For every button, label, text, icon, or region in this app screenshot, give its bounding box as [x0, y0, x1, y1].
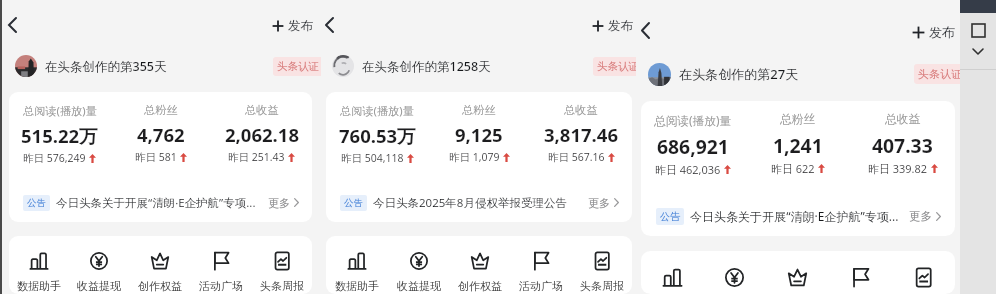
staticText: 总收益 — [885, 112, 921, 127]
staticText: 活动广场 — [199, 279, 243, 293]
button[interactable]: 总阅读(播放)量 — [9, 92, 312, 222]
staticText: 在头条创作的第355天 — [45, 58, 167, 75]
staticText: 在头条创作的第1258天 — [362, 58, 491, 75]
staticText: 公告 — [344, 197, 363, 209]
staticText: 数据助手 — [335, 279, 379, 293]
staticText: 407.33 — [872, 132, 933, 158]
staticText: 在头条创作的第27天 — [679, 65, 799, 83]
staticText: 686,921 — [657, 133, 729, 159]
staticText: 总阅读(播放)量 — [23, 103, 97, 118]
staticText: 总收益 — [245, 103, 279, 117]
staticText: 昨日 576,249 — [23, 151, 86, 165]
button[interactable]: 公告 — [9, 188, 312, 217]
staticText: 活动广场 — [519, 279, 563, 293]
button[interactable]: 总阅读(播放)量 — [641, 101, 955, 236]
staticText: 昨日 339.82 — [868, 161, 928, 176]
staticText: 昨日 251.43 — [228, 150, 285, 164]
staticText: 创作权益 — [458, 279, 502, 293]
button[interactable]: 公告 — [641, 201, 955, 231]
button[interactable]: Profile avatar — [321, 45, 636, 87]
button[interactable]: 活动广场 — [510, 252, 571, 293]
button[interactable]: Tabs — [960, 24, 996, 37]
staticText: 昨日 504,118 — [341, 151, 404, 165]
staticText: 总粉丝 — [780, 112, 816, 127]
button[interactable]: Profile avatar — [648, 63, 671, 86]
staticText: 头条周报 — [260, 279, 304, 293]
staticText: 总收益 — [564, 103, 598, 117]
button[interactable]: 创作权益 — [129, 252, 190, 293]
button[interactable]: 头条周报 — [251, 252, 312, 293]
staticText: 1,241 — [773, 132, 823, 158]
button[interactable]: 发布 — [910, 20, 958, 44]
button[interactable]: 发布 — [270, 14, 315, 38]
button[interactable]: Profile avatar — [332, 55, 354, 77]
staticText: 更多 — [588, 196, 610, 210]
staticText: 头条认证 — [277, 60, 319, 73]
staticText: 公告 — [27, 197, 46, 209]
button[interactable]: 收益提现 — [703, 268, 766, 294]
button[interactable]: 创作权益 — [449, 252, 510, 293]
staticText: 总粉丝 — [462, 103, 496, 117]
staticText: 公告 — [660, 210, 680, 223]
button[interactable]: 数据助手 — [326, 252, 388, 293]
staticText: 总阅读(播放)量 — [340, 103, 414, 118]
staticText: 总粉丝 — [144, 103, 178, 117]
button[interactable]: Back — [0, 9, 25, 41]
staticText: 昨日 1,079 — [449, 150, 500, 164]
button[interactable]: More — [960, 48, 996, 55]
staticText: 昨日 581 — [135, 150, 177, 164]
button[interactable]: 活动广场 — [190, 252, 251, 293]
staticText: 昨日 567.16 — [548, 150, 605, 164]
staticText: 总阅读(播放)量 — [654, 112, 732, 128]
button[interactable]: Profile avatar — [636, 52, 960, 96]
button[interactable]: 收益提现 — [69, 252, 129, 293]
button[interactable]: Profile avatar — [15, 55, 37, 77]
staticText: 头条认证 — [918, 67, 960, 81]
button[interactable]: Profile avatar — [0, 45, 321, 87]
staticText: 更多 — [268, 196, 290, 210]
staticText: 发布 — [288, 18, 313, 34]
staticText: 昨日 622 — [771, 161, 815, 176]
staticText: 发布 — [929, 24, 956, 40]
button[interactable]: 总阅读(播放)量 — [326, 92, 632, 222]
staticText: 今日头条关于开展“清朗·E企护航”专项... — [56, 195, 256, 211]
staticText: 更多 — [909, 209, 932, 223]
staticText: 3,817.46 — [544, 122, 618, 147]
staticText: 头条认证 — [597, 60, 636, 73]
staticText: 创作权益 — [138, 279, 182, 293]
button[interactable]: 收益提现 — [388, 252, 449, 293]
staticText: 数据助手 — [17, 279, 61, 293]
button[interactable]: 数据助手 — [641, 268, 703, 294]
staticText: 今日头条2025年8月侵权举报受理公告 — [373, 195, 567, 211]
button[interactable]: 头条周报 — [571, 252, 632, 293]
button[interactable]: 活动广场 — [829, 268, 892, 294]
staticText: 发布 — [608, 18, 633, 34]
staticText: 今日头条关于开展“清朗·E企护航”专项... — [690, 208, 899, 224]
staticText: 昨日 462,036 — [655, 162, 721, 177]
button[interactable]: 公告 — [326, 188, 632, 217]
staticText: 收益提现 — [77, 279, 121, 293]
staticText: 2,062.18 — [225, 122, 299, 147]
staticText: 4,762 — [137, 122, 185, 147]
staticText: 515.22万 — [21, 123, 98, 148]
button[interactable]: 发布 — [590, 14, 635, 38]
button[interactable]: Back — [321, 9, 342, 41]
button[interactable]: 创作权益 — [766, 268, 829, 294]
staticText: 9,125 — [455, 122, 503, 147]
staticText: 头条周报 — [580, 279, 624, 293]
button[interactable]: Back — [636, 14, 658, 47]
button[interactable]: 数据助手 — [9, 252, 69, 293]
button[interactable]: 头条周报 — [892, 268, 955, 294]
staticText: 收益提现 — [397, 279, 441, 293]
staticText: 760.53万 — [339, 123, 416, 148]
